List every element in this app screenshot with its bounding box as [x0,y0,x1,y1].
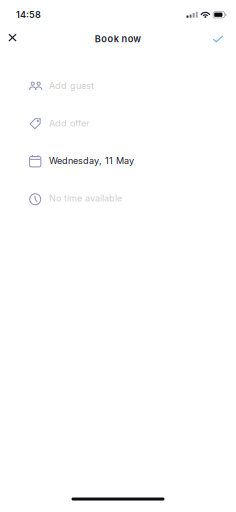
staticText: Wednesday, 11 May [49,155,134,166]
button[interactable]: Add guest [0,68,236,105]
button[interactable]: No time available [0,180,236,218]
button[interactable]: Wednesday, 11 May [0,143,236,180]
staticText: Add guest [49,80,94,91]
staticText: Add offer [49,118,89,129]
staticText: Book now [95,33,141,44]
button[interactable]: Close [0,27,25,49]
staticText: No time available [49,193,122,204]
staticText: 14:58 [16,9,41,20]
button[interactable]: Add offer [0,105,236,143]
button[interactable]: Confirm [205,28,230,50]
